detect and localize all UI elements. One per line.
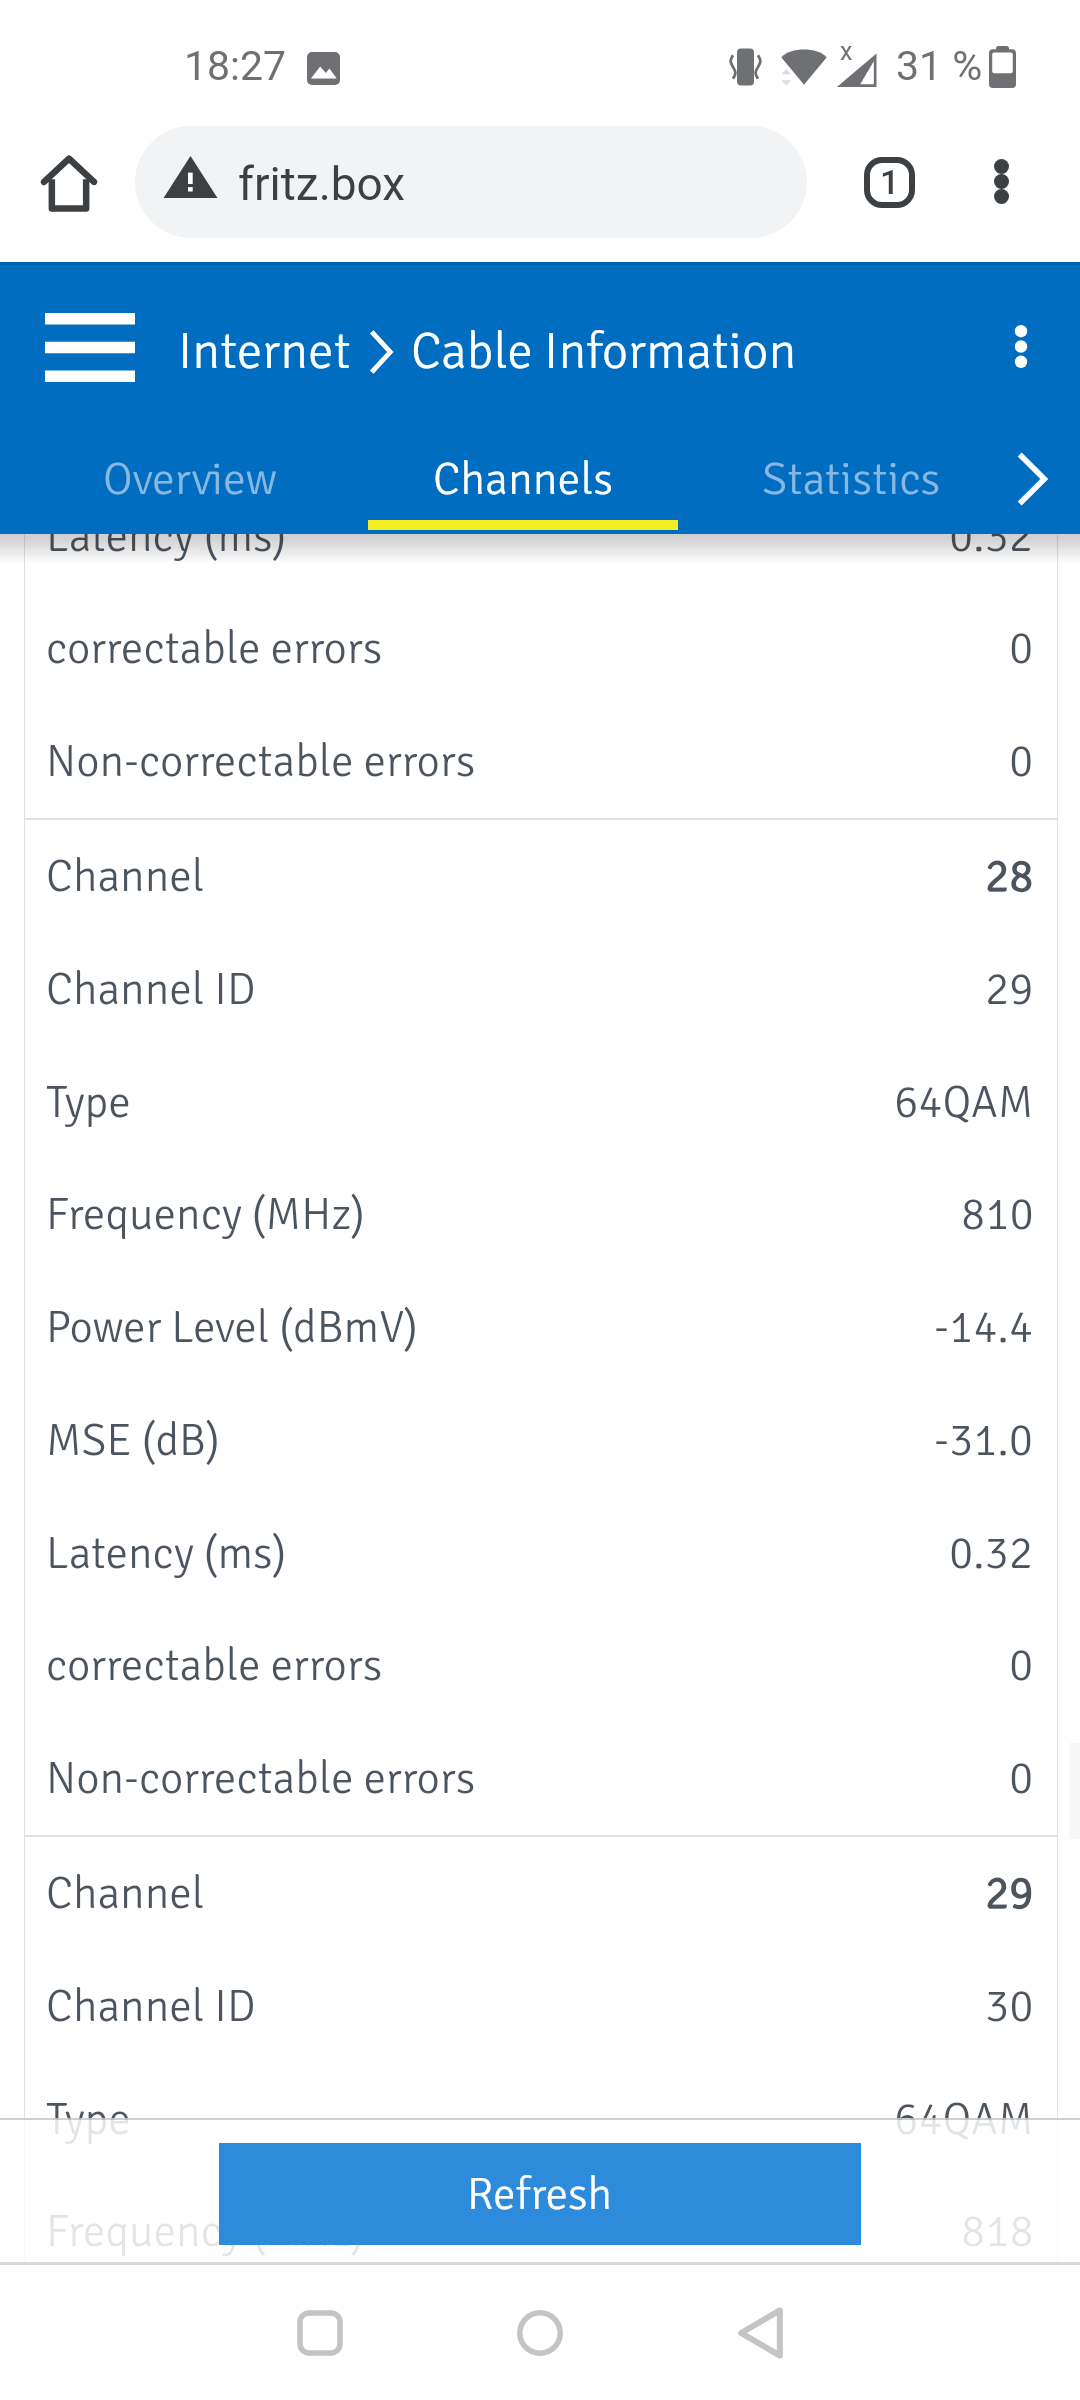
button[interactable]: Channel ID (0, 933, 1080, 1046)
button[interactable]: Home (465, 2265, 615, 2400)
button[interactable]: MSE (dB) (0, 1384, 1080, 1497)
button[interactable]: More options (951, 131, 1051, 231)
staticText: Power Level (dBmV) (46, 1300, 418, 1355)
button[interactable]: Refresh (219, 2143, 861, 2245)
button[interactable]: Page menu (971, 296, 1071, 396)
staticText: 1 (880, 162, 900, 202)
staticText: Overview (103, 451, 278, 507)
button[interactable]: Latency (ms) (0, 480, 1080, 593)
staticText: correctable errors (46, 1638, 383, 1693)
staticText: -31.0 (934, 1413, 1034, 1468)
staticText: Refresh (467, 2167, 613, 2222)
button[interactable]: Channel (0, 820, 1080, 933)
staticText: 0 (1009, 734, 1034, 789)
button[interactable]: Latency (ms) (0, 1497, 1080, 1610)
staticText: Channel (46, 849, 205, 904)
button[interactable]: Non-correctable errors (0, 705, 1080, 818)
button[interactable]: Non-correctable errors (0, 1722, 1080, 1835)
staticText: fritz.box (238, 157, 406, 211)
button[interactable]: Tabs (839, 132, 939, 232)
staticText: correctable errors (46, 621, 383, 676)
staticText: Channels (433, 451, 613, 507)
button[interactable]: Power Level (dBmV) (0, 2288, 1080, 2400)
staticText: 0.32 (949, 1526, 1034, 1581)
staticText: 28 (985, 849, 1034, 904)
button[interactable]: Overview (27, 431, 353, 527)
staticText: Cable Information (411, 320, 797, 383)
staticText: MSE (dB) (46, 1413, 220, 1468)
staticText: 0 (1009, 1751, 1034, 1806)
staticText: Internet (178, 320, 351, 383)
staticText: 64QAM (894, 1075, 1034, 1130)
staticText: Power Level (dBmV) (46, 2317, 418, 2372)
staticText: Latency (ms) (46, 1526, 287, 1581)
staticText: 0 (1009, 1638, 1034, 1693)
staticText: 31 % (896, 42, 983, 90)
button[interactable]: Type (0, 1046, 1080, 1159)
button[interactable]: fritz.box (135, 126, 807, 238)
button[interactable]: Channel (0, 1837, 1080, 1950)
button[interactable]: correctable errors (0, 1609, 1080, 1722)
staticText: 0.32 (949, 509, 1034, 564)
staticText: Channel ID (46, 1979, 256, 2034)
button[interactable]: Home (19, 133, 119, 233)
staticText: Channel ID (46, 962, 256, 1017)
button[interactable]: Back (685, 2265, 835, 2400)
staticText: 0 (1009, 621, 1034, 676)
staticText: x (840, 37, 853, 66)
staticText: Channel (46, 1866, 205, 1921)
button[interactable]: Frequency (MHz) (0, 2175, 1080, 2288)
staticText: -14.4 (934, 1300, 1034, 1355)
staticText: Type (46, 1075, 131, 1130)
button[interactable]: Next tabs (984, 431, 1080, 527)
staticText: Non-correctable errors (46, 734, 476, 789)
staticText: 18:27 (184, 42, 287, 90)
button[interactable]: Channel ID (0, 1950, 1080, 2063)
staticText: 29 (985, 1866, 1034, 1921)
staticText: 818 (961, 2204, 1034, 2259)
button[interactable]: Menu (0, 282, 180, 412)
staticText: 64QAM (894, 2092, 1034, 2147)
staticText: Statistics (762, 451, 941, 507)
staticText: Latency (ms) (46, 509, 287, 564)
button[interactable]: Frequency (MHz) (0, 1158, 1080, 1271)
button[interactable]: Recent apps (245, 2265, 395, 2400)
button[interactable]: Channels (368, 431, 678, 527)
button[interactable]: Statistics (700, 431, 1002, 527)
staticText: Type (46, 2092, 131, 2147)
staticText: Frequency (MHz) (46, 1187, 365, 1242)
staticText: 810 (961, 1187, 1034, 1242)
button[interactable]: Type (0, 2063, 1080, 2176)
button[interactable]: Power Level (dBmV) (0, 1271, 1080, 1384)
staticText: Non-correctable errors (46, 1751, 476, 1806)
staticText: 29 (985, 962, 1034, 1017)
button[interactable]: correctable errors (0, 592, 1080, 705)
staticText: Frequency (MHz) (46, 2204, 365, 2259)
staticText: 30 (985, 1979, 1034, 2034)
